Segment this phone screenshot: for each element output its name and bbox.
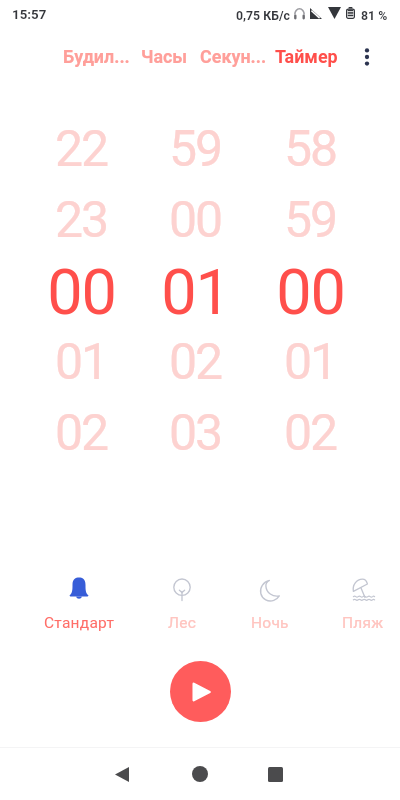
button[interactable]: Start timer xyxy=(170,661,231,722)
staticText: Лес xyxy=(168,614,197,632)
staticText: 00 xyxy=(47,256,116,326)
staticText: Часы xyxy=(141,46,188,67)
staticText: 02 xyxy=(169,333,221,392)
button[interactable]: 59 xyxy=(140,108,250,474)
staticText: 00 xyxy=(276,256,345,326)
staticText: Стандарт xyxy=(44,614,115,632)
button[interactable]: Таймер xyxy=(269,42,332,63)
staticText: Секун... xyxy=(200,46,267,67)
button[interactable]: Часы xyxy=(135,42,182,63)
button[interactable]: Ночь xyxy=(230,566,310,636)
button[interactable]: More options xyxy=(355,44,379,70)
staticText: 0,75 КБ/с xyxy=(236,9,290,23)
button[interactable]: 58 xyxy=(255,108,365,474)
staticText: 02 xyxy=(284,404,336,463)
staticText: 58 xyxy=(284,120,336,179)
button[interactable]: Стандарт xyxy=(39,566,119,636)
staticText: 01 xyxy=(161,256,230,326)
staticText: Ночь xyxy=(251,614,289,632)
button[interactable]: Recent apps xyxy=(261,760,289,788)
staticText: 59 xyxy=(284,191,336,250)
button[interactable]: Секун... xyxy=(194,42,261,63)
staticText: 00 xyxy=(169,191,221,250)
button[interactable]: Пляж xyxy=(323,566,400,636)
staticText: 23 xyxy=(55,191,107,250)
button[interactable]: 22 xyxy=(26,108,136,474)
button[interactable]: Home xyxy=(186,760,214,788)
staticText: 01 xyxy=(55,333,107,392)
button[interactable]: Back xyxy=(108,760,136,788)
staticText: Будил... xyxy=(63,46,130,67)
staticText: 22 xyxy=(55,120,107,179)
staticText: 59 xyxy=(169,120,221,179)
staticText: 03 xyxy=(169,404,221,463)
staticText: 02 xyxy=(55,404,107,463)
staticText: 01 xyxy=(284,333,336,392)
button[interactable]: Будил... xyxy=(57,42,124,63)
button[interactable]: Лес xyxy=(142,566,222,636)
staticText: Таймер xyxy=(275,46,338,67)
staticText: 15:57 xyxy=(12,7,47,23)
staticText: Пляж xyxy=(342,614,384,632)
staticText: 81 % xyxy=(361,9,388,23)
